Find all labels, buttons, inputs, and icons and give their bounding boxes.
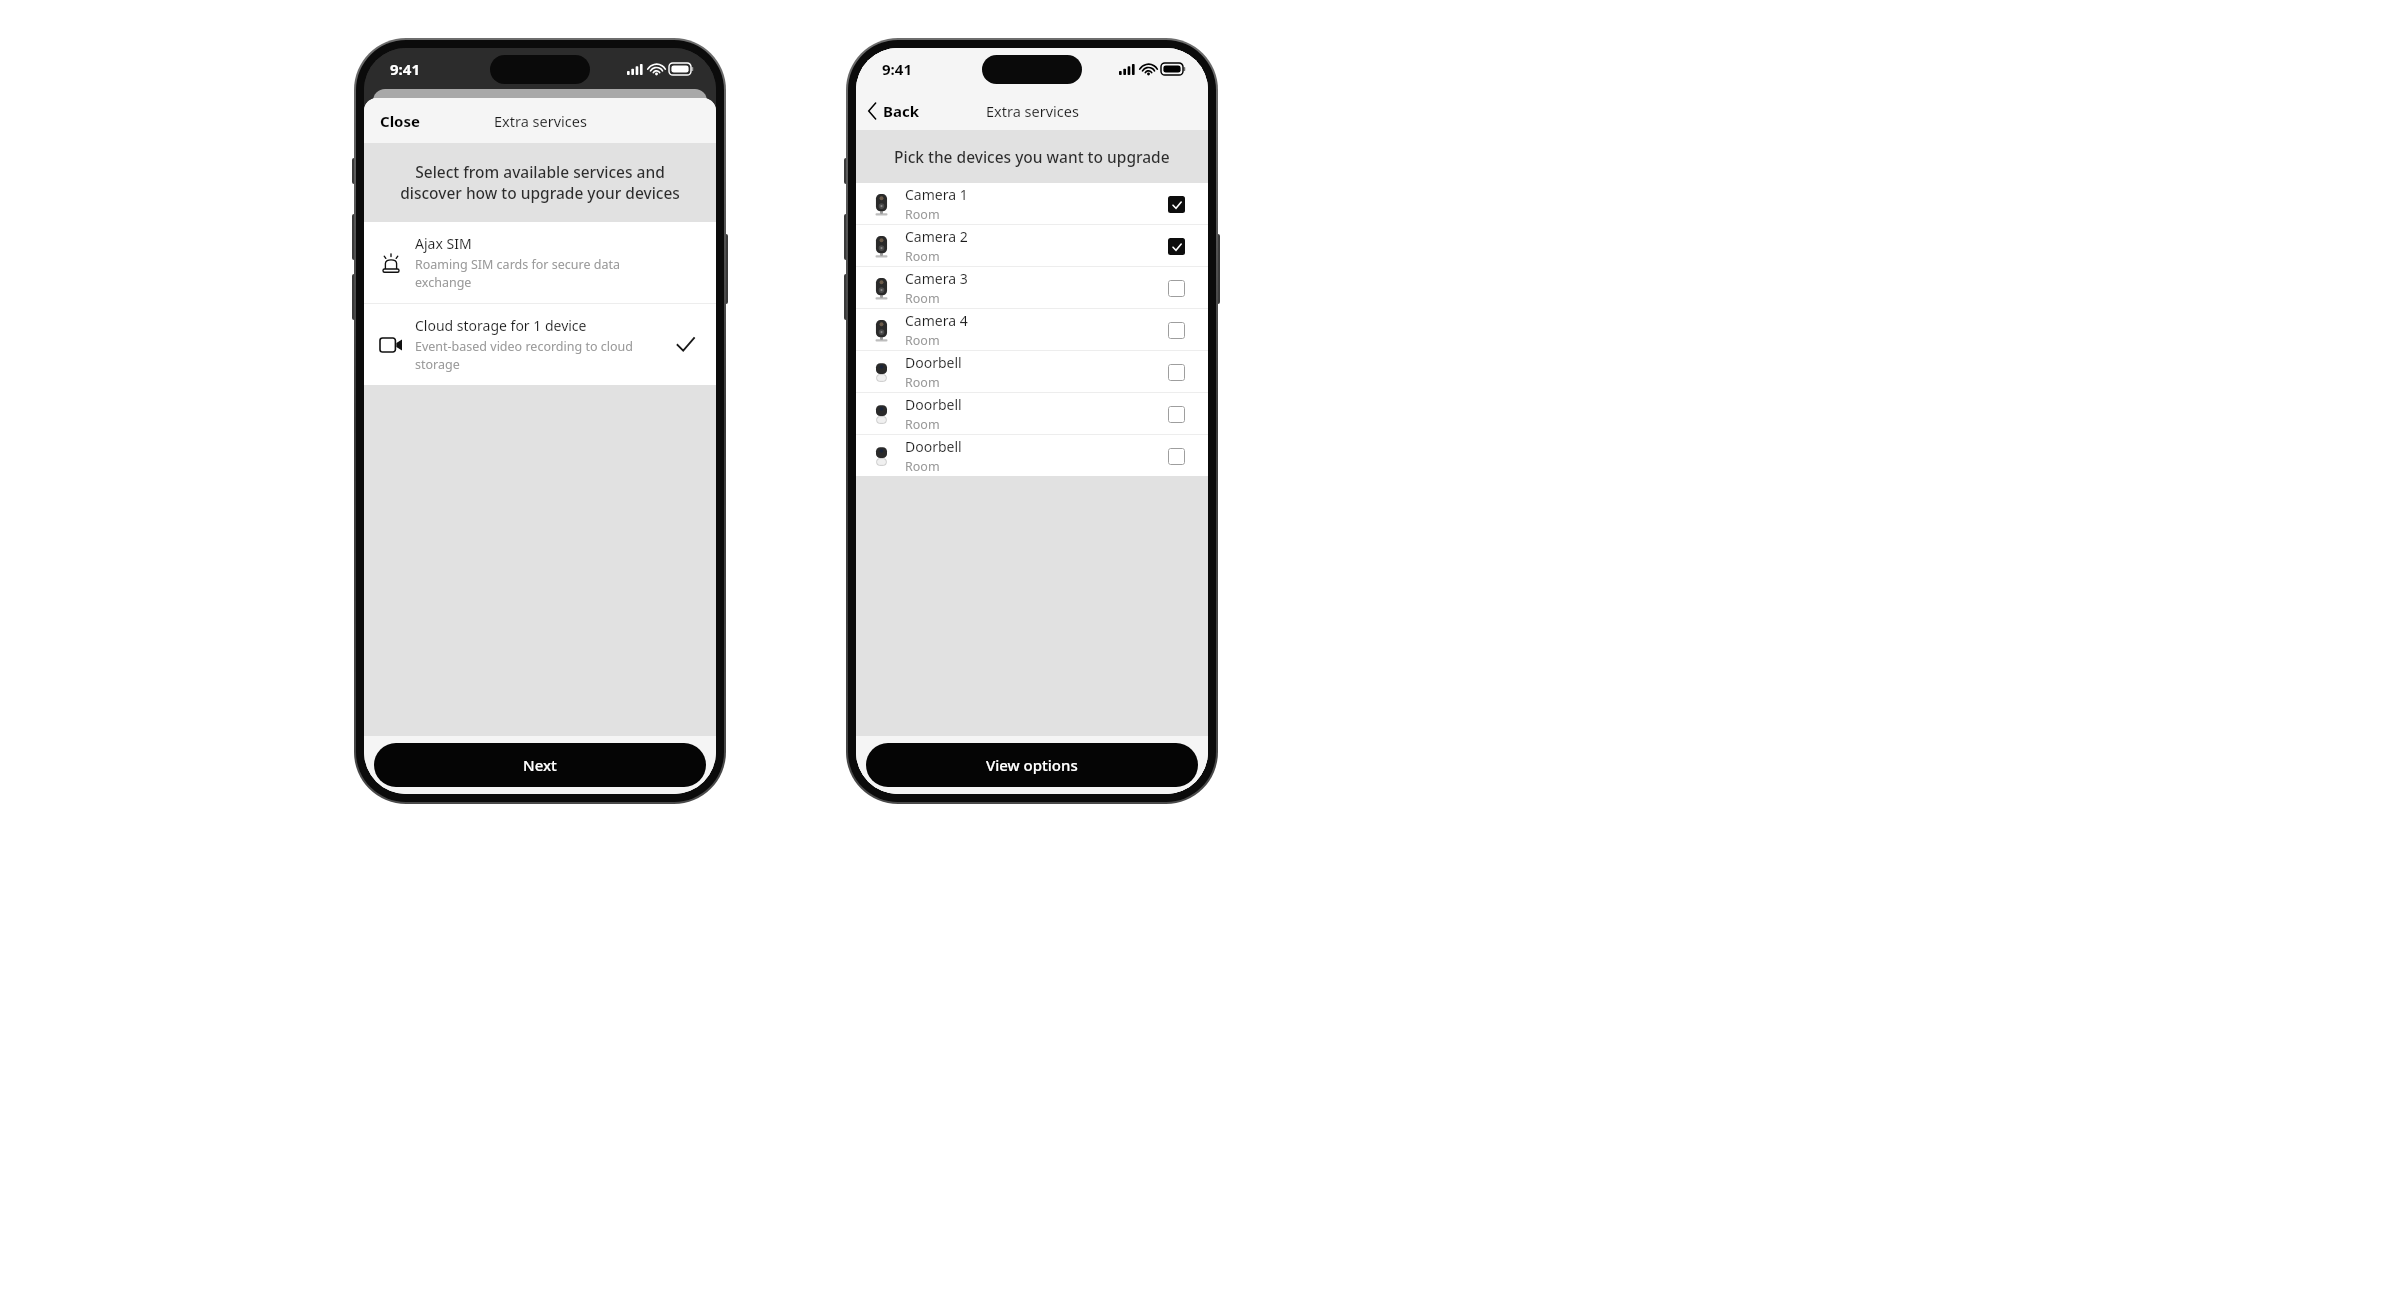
button[interactable]: Camera 4 [856,309,1208,350]
staticText: 9:41 [882,59,912,79]
staticText: Room [905,290,940,307]
staticText: Room [905,374,940,391]
staticText: 9:41 [390,59,420,79]
button[interactable]: Back [856,95,934,127]
staticText: Room [905,248,940,265]
button[interactable]: Select Doorbell [1158,354,1194,390]
button[interactable]: Doorbell [856,393,1208,434]
button[interactable]: Select Camera 1 [1158,186,1194,222]
staticText: Pick the devices you want to upgrade [894,146,1170,167]
button[interactable]: Select Camera 3 [1158,270,1194,306]
staticText: Close [380,111,420,131]
staticText: Camera 1 [905,185,968,204]
staticText: Doorbell [905,395,962,414]
staticText: Ajax SIM [415,234,472,253]
staticText: Extra services [986,101,1079,121]
staticText: View options [986,755,1078,775]
button[interactable]: Select Doorbell [1158,438,1194,474]
staticText: Camera 4 [905,311,968,330]
staticText: Doorbell [905,437,962,456]
staticText: Next [523,755,557,775]
staticText: Cloud storage for 1 device [415,316,587,335]
button[interactable]: Ajax SIM [364,222,716,303]
button[interactable]: Doorbell [856,435,1208,476]
button[interactable]: View options [866,743,1198,787]
button[interactable]: Select Doorbell [1158,396,1194,432]
staticText: Room [905,416,940,433]
staticText: Room [905,206,940,223]
button[interactable]: Cloud storage for 1 device [364,304,716,385]
staticText: Event-based video recording to cloud sto… [415,338,668,373]
staticText: Roaming SIM cards for secure data exchan… [415,256,668,291]
button[interactable]: Camera 1 [856,183,1208,224]
button[interactable]: Doorbell [856,351,1208,392]
button[interactable]: Select Camera 4 [1158,312,1194,348]
staticText: Extra services [494,111,587,131]
staticText: Camera 2 [905,227,968,246]
staticText: Camera 3 [905,269,968,288]
staticText: Select from available services and disco… [384,161,696,204]
staticText: Room [905,458,940,475]
button[interactable]: Close [364,101,436,141]
staticText: Room [905,332,940,349]
button[interactable]: Camera 3 [856,267,1208,308]
button[interactable]: Next [374,743,706,787]
button[interactable]: Select Camera 2 [1158,228,1194,264]
staticText: Doorbell [905,353,962,372]
staticText: Back [883,101,920,121]
button[interactable]: Camera 2 [856,225,1208,266]
